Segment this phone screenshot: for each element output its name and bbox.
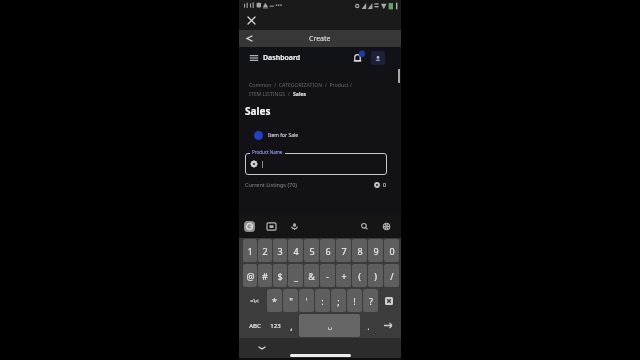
button[interactable]: Close [245, 14, 258, 27]
staticText: * [272, 295, 277, 307]
staticText: 2 [262, 245, 268, 257]
staticText: , [290, 320, 293, 332]
button[interactable]: ? [363, 289, 378, 312]
button[interactable]: 9 [368, 239, 383, 262]
button[interactable]: Backspace [379, 289, 399, 312]
staticText: . [367, 320, 370, 332]
button[interactable]: 8 [352, 239, 367, 262]
staticText: Dashboard [263, 53, 301, 63]
button[interactable]: Item for Sale [254, 131, 299, 140]
button[interactable]: 3 [273, 239, 287, 262]
staticText: 7 [341, 245, 347, 257]
button[interactable]: , [285, 314, 298, 337]
staticText: Common / CATEGORIZATION / Product / [249, 81, 352, 88]
button[interactable]: _ [288, 264, 303, 287]
button[interactable]: Voice input [289, 221, 300, 232]
staticText: 5 [309, 245, 315, 257]
button[interactable]: Search [359, 221, 370, 232]
button[interactable]: ; [331, 289, 346, 312]
staticText: / [390, 270, 394, 282]
button[interactable]: ' [299, 289, 314, 312]
staticText: 9 [373, 245, 379, 257]
button[interactable]: @ [243, 264, 257, 287]
button[interactable]: * [267, 289, 282, 312]
staticText: ? [369, 295, 373, 307]
staticText: 3 [277, 245, 283, 257]
button[interactable]: - [320, 264, 335, 287]
staticText: 6 [325, 245, 331, 257]
staticText: $ [277, 270, 283, 282]
button[interactable]: ABC [243, 314, 266, 337]
staticText: : [321, 295, 324, 307]
button[interactable]: 5 [304, 239, 319, 262]
button[interactable]: Stickers [266, 221, 277, 232]
button[interactable]: 4 [288, 239, 303, 262]
staticText: =\< [250, 297, 259, 304]
button[interactable]: 1 [243, 239, 257, 262]
staticText: Sales [245, 104, 271, 118]
staticText: & [308, 270, 315, 282]
button[interactable]: 123 [267, 314, 284, 337]
button[interactable]: ) [368, 264, 383, 287]
button[interactable]: . [361, 314, 376, 337]
staticText: _ [294, 270, 298, 282]
button[interactable]: Enter [377, 314, 399, 337]
button[interactable]: Back [243, 32, 256, 45]
staticText: 123 [270, 322, 281, 330]
button[interactable]: + [336, 264, 351, 287]
staticText: 0 [383, 181, 387, 188]
button[interactable]: 7 [336, 239, 351, 262]
staticText: 4 [293, 245, 299, 257]
staticText: @ [246, 270, 255, 282]
button[interactable]: / [384, 264, 399, 287]
staticText: Create [309, 34, 331, 44]
button[interactable]: 2 [258, 239, 272, 262]
staticText: ␣ [328, 322, 332, 329]
button[interactable]: " [283, 289, 298, 312]
button[interactable]: ␣ [299, 314, 360, 337]
staticText: 1 [247, 245, 253, 257]
button[interactable]: Google [244, 221, 255, 232]
button[interactable]: Settings [381, 221, 392, 232]
staticText: Item for Sale [268, 132, 299, 139]
button[interactable]: ! [347, 289, 362, 312]
staticText: 8 [357, 245, 363, 257]
staticText: Current Listings (70) [245, 181, 298, 188]
staticText: 0 [389, 245, 395, 257]
button[interactable]: : [315, 289, 330, 312]
button[interactable]: =\< [243, 289, 266, 312]
staticText: - [326, 270, 329, 282]
button[interactable]: # [258, 264, 272, 287]
button[interactable]: 0 [384, 239, 399, 262]
staticText: ( [358, 270, 361, 282]
staticText: Product Name [252, 149, 283, 155]
button[interactable]: & [304, 264, 319, 287]
staticText: " [289, 295, 293, 307]
staticText: + [341, 270, 347, 282]
staticText: # [262, 270, 268, 282]
button[interactable]: Hide keyboard [258, 344, 266, 352]
staticText: ) [374, 270, 377, 282]
staticText: Sales [293, 90, 307, 97]
staticText: ' [305, 295, 308, 307]
button[interactable]: Menu [249, 53, 259, 63]
button[interactable]: $ [273, 264, 287, 287]
button[interactable]: Notifications [351, 52, 364, 65]
button[interactable]: 6 [320, 239, 335, 262]
staticText: ! [353, 295, 356, 307]
staticText: ; [337, 295, 340, 307]
staticText: ABC [249, 322, 261, 330]
staticText: ITEM LISTINGS / [249, 90, 293, 97]
button[interactable]: ( [352, 264, 367, 287]
button[interactable]: Profile [371, 51, 385, 65]
